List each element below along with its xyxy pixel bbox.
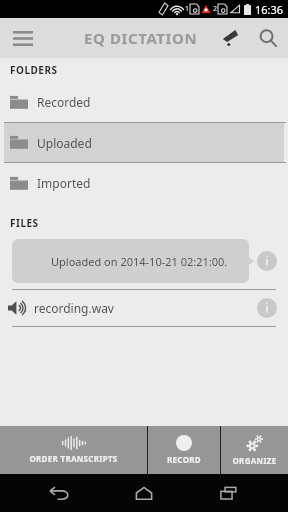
staticText: Uploaded bbox=[37, 135, 92, 151]
button[interactable]: Search bbox=[248, 18, 288, 58]
button[interactable]: ORGANIZE bbox=[221, 426, 288, 474]
staticText: Imported bbox=[37, 175, 91, 191]
staticText: ORGANIZE bbox=[232, 455, 277, 466]
button[interactable]: Imported bbox=[0, 163, 288, 203]
button[interactable]: ORDER TRANSCRIPTS bbox=[0, 426, 147, 474]
staticText: recording.wav bbox=[34, 300, 256, 316]
button[interactable]: Uploaded on 2014-10-21 02:21:00. bbox=[12, 239, 278, 283]
staticText: 1 bbox=[185, 4, 190, 14]
button[interactable]: Uploaded bbox=[4, 123, 284, 162]
staticText: FOLDERS bbox=[10, 63, 58, 77]
button[interactable]: Back bbox=[33, 474, 85, 512]
button[interactable]: Recorded bbox=[0, 82, 288, 122]
staticText: Uploaded on 2014-10-21 02:21:00. bbox=[51, 254, 228, 269]
staticText: EQ DICTATION bbox=[84, 28, 198, 48]
button[interactable]: Info bbox=[256, 250, 278, 272]
staticText: 16:36 bbox=[255, 2, 284, 17]
button[interactable]: recording.wav bbox=[0, 290, 288, 326]
button[interactable]: Notifications bbox=[212, 18, 248, 58]
staticText: Recorded bbox=[37, 94, 91, 110]
button[interactable]: RECORD bbox=[148, 426, 220, 474]
button[interactable]: Menu bbox=[0, 18, 46, 58]
staticText: ORDER TRANSCRIPTS bbox=[29, 453, 118, 464]
button[interactable]: Info bbox=[256, 297, 278, 319]
staticText: 2 bbox=[213, 4, 218, 14]
button[interactable]: Home bbox=[118, 474, 170, 512]
button[interactable]: Recent apps bbox=[203, 474, 255, 512]
staticText: RECORD bbox=[167, 454, 201, 465]
staticText: FILES bbox=[10, 216, 39, 230]
